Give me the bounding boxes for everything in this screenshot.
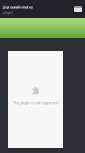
button[interactable]: Menu xyxy=(72,1,84,17)
staticText: The plugin is not supported xyxy=(13,100,58,105)
staticText: pages xyxy=(3,9,13,15)
staticText: Jsgroundminutes xyxy=(3,4,33,9)
